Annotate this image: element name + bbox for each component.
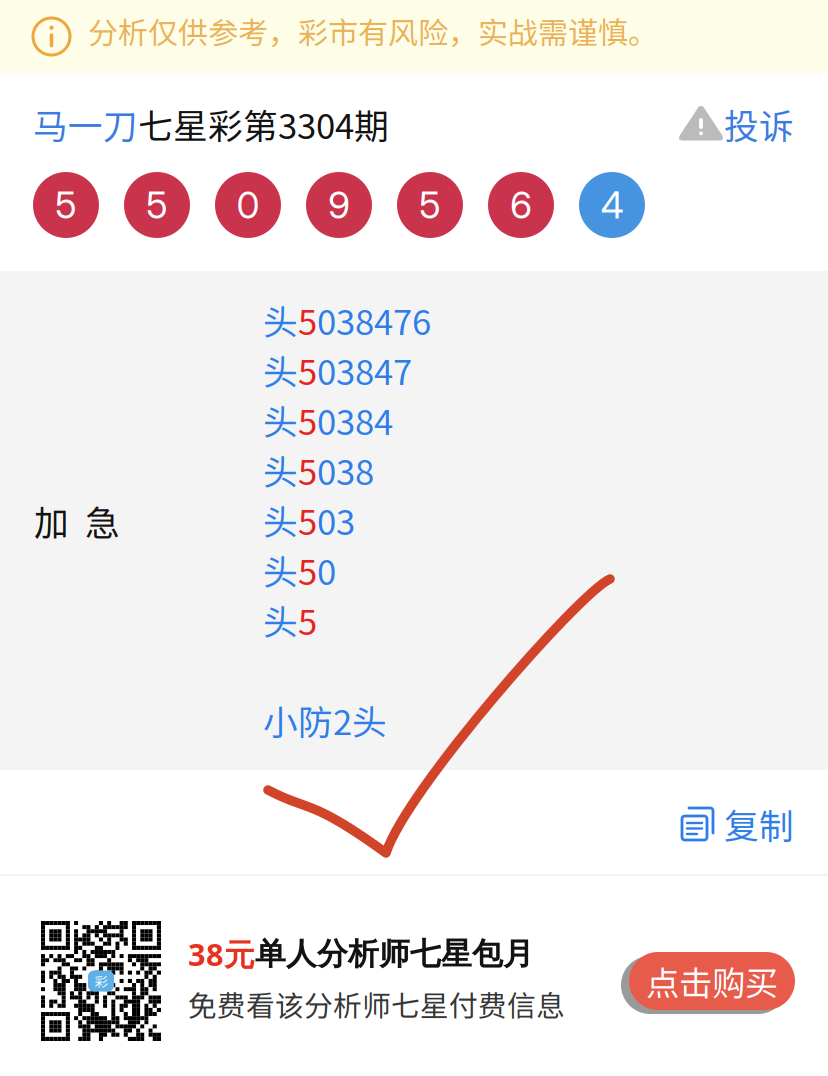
- button[interactable]: 复制: [677, 789, 828, 859]
- staticText: 七星彩第3304期: [138, 99, 389, 149]
- staticText: 5: [298, 595, 317, 645]
- staticText: 加 急: [34, 495, 120, 546]
- staticText: 头: [263, 395, 298, 445]
- staticText: 03847: [317, 345, 412, 395]
- staticText: 6: [510, 182, 532, 228]
- staticText: 头: [263, 445, 298, 495]
- staticText: 4: [600, 182, 623, 228]
- staticText: 头: [263, 595, 298, 645]
- staticText: 小防2头: [263, 695, 387, 745]
- staticText: 038: [317, 445, 374, 495]
- staticText: 马一刀: [33, 99, 138, 149]
- staticText: 头: [263, 495, 298, 545]
- staticText: 5: [298, 345, 317, 395]
- staticText: 5: [298, 545, 317, 595]
- staticText: 5: [298, 495, 317, 545]
- staticText: 9: [328, 182, 350, 228]
- staticText: 免费看该分析师七星付费信息: [188, 983, 565, 1025]
- staticText: 0: [236, 182, 259, 228]
- staticText: 0384: [317, 395, 393, 445]
- staticText: 5: [298, 295, 317, 345]
- button[interactable]: 点击购买: [625, 950, 828, 1012]
- staticText: 单人分析师七星包月: [255, 935, 534, 973]
- staticText: 5: [55, 182, 77, 228]
- staticText: 5: [298, 445, 317, 495]
- staticText: 0: [317, 545, 336, 595]
- staticText: 038476: [317, 295, 431, 345]
- staticText: 彩: [94, 971, 107, 991]
- staticText: 5: [146, 182, 168, 228]
- staticText: 03: [317, 495, 355, 545]
- staticText: 点击购买: [646, 957, 778, 1005]
- staticText: 5: [419, 182, 441, 228]
- staticText: 分析仅供参考，彩市有风险，实战需谨慎。: [88, 9, 658, 53]
- staticText: 5: [298, 395, 317, 445]
- staticText: 头: [263, 545, 298, 595]
- staticText: 头: [263, 295, 298, 345]
- staticText: 复制: [724, 799, 794, 849]
- button[interactable]: 投诉: [669, 93, 828, 155]
- staticText: 38元: [188, 933, 255, 975]
- staticText: 投诉: [724, 99, 794, 149]
- staticText: 头: [263, 345, 298, 395]
